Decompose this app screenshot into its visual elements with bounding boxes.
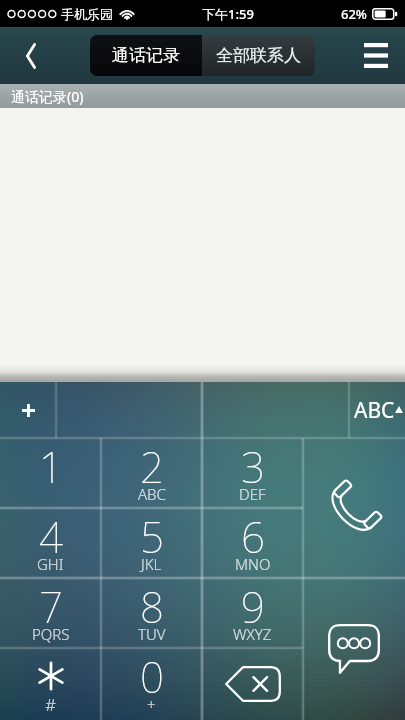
staticText: 9 xyxy=(241,578,265,635)
button[interactable]: 0 xyxy=(101,648,202,720)
staticText: DEF xyxy=(239,484,266,504)
staticText: 4 xyxy=(39,508,63,565)
button[interactable]: 1 xyxy=(0,438,101,508)
button[interactable]: 通话记录 xyxy=(90,35,202,76)
button[interactable]: 5 xyxy=(101,508,202,578)
staticText: 手机乐园 xyxy=(61,6,113,22)
staticText: ABC xyxy=(354,396,395,425)
staticText: 8 xyxy=(140,578,164,635)
staticText: 全部联系人 xyxy=(216,45,301,66)
staticText: 1 xyxy=(39,438,63,495)
button[interactable]: 2 xyxy=(101,438,202,508)
button[interactable]: 6 xyxy=(202,508,303,578)
staticText: MNO xyxy=(235,554,271,574)
button[interactable]: Menu xyxy=(347,27,405,84)
button[interactable]: Delete xyxy=(202,648,303,720)
staticText: 5 xyxy=(140,508,164,565)
staticText: 3 xyxy=(241,438,265,495)
staticText: # xyxy=(45,693,56,716)
staticText: 62% xyxy=(341,5,367,23)
staticText: 下午1:59 xyxy=(202,5,254,23)
button[interactable]: Dial pad xyxy=(202,382,349,438)
button[interactable]: 全部联系人 xyxy=(202,35,315,76)
button[interactable]: 8 xyxy=(101,578,202,648)
button[interactable]: Back xyxy=(0,27,62,84)
button[interactable]: Message xyxy=(303,578,405,720)
button[interactable]: 3 xyxy=(202,438,303,508)
staticText: 通话记录 xyxy=(112,45,180,66)
staticText: 6 xyxy=(241,508,265,565)
button[interactable]: Add number xyxy=(0,382,56,438)
staticText: GHI xyxy=(37,554,64,574)
button[interactable]: Call xyxy=(303,438,405,578)
staticText: 7 xyxy=(39,578,63,635)
button[interactable]: Star xyxy=(0,648,101,720)
staticText: WXYZ xyxy=(233,624,272,644)
staticText: TUV xyxy=(138,624,166,644)
staticText: 通话记录(0) xyxy=(11,87,84,106)
staticText: JKL xyxy=(141,554,162,574)
staticText: PQRS xyxy=(32,624,70,644)
button[interactable]: 4 xyxy=(0,508,101,578)
staticText: + xyxy=(147,694,156,714)
button[interactable]: 7 xyxy=(0,578,101,648)
button[interactable]: 9 xyxy=(202,578,303,648)
staticText: ABC xyxy=(138,484,166,504)
button[interactable]: Switch to ABC keyboard xyxy=(349,382,405,438)
staticText: 2 xyxy=(140,438,164,495)
staticText: 0 xyxy=(140,648,164,705)
button[interactable]: Number field xyxy=(56,382,202,438)
